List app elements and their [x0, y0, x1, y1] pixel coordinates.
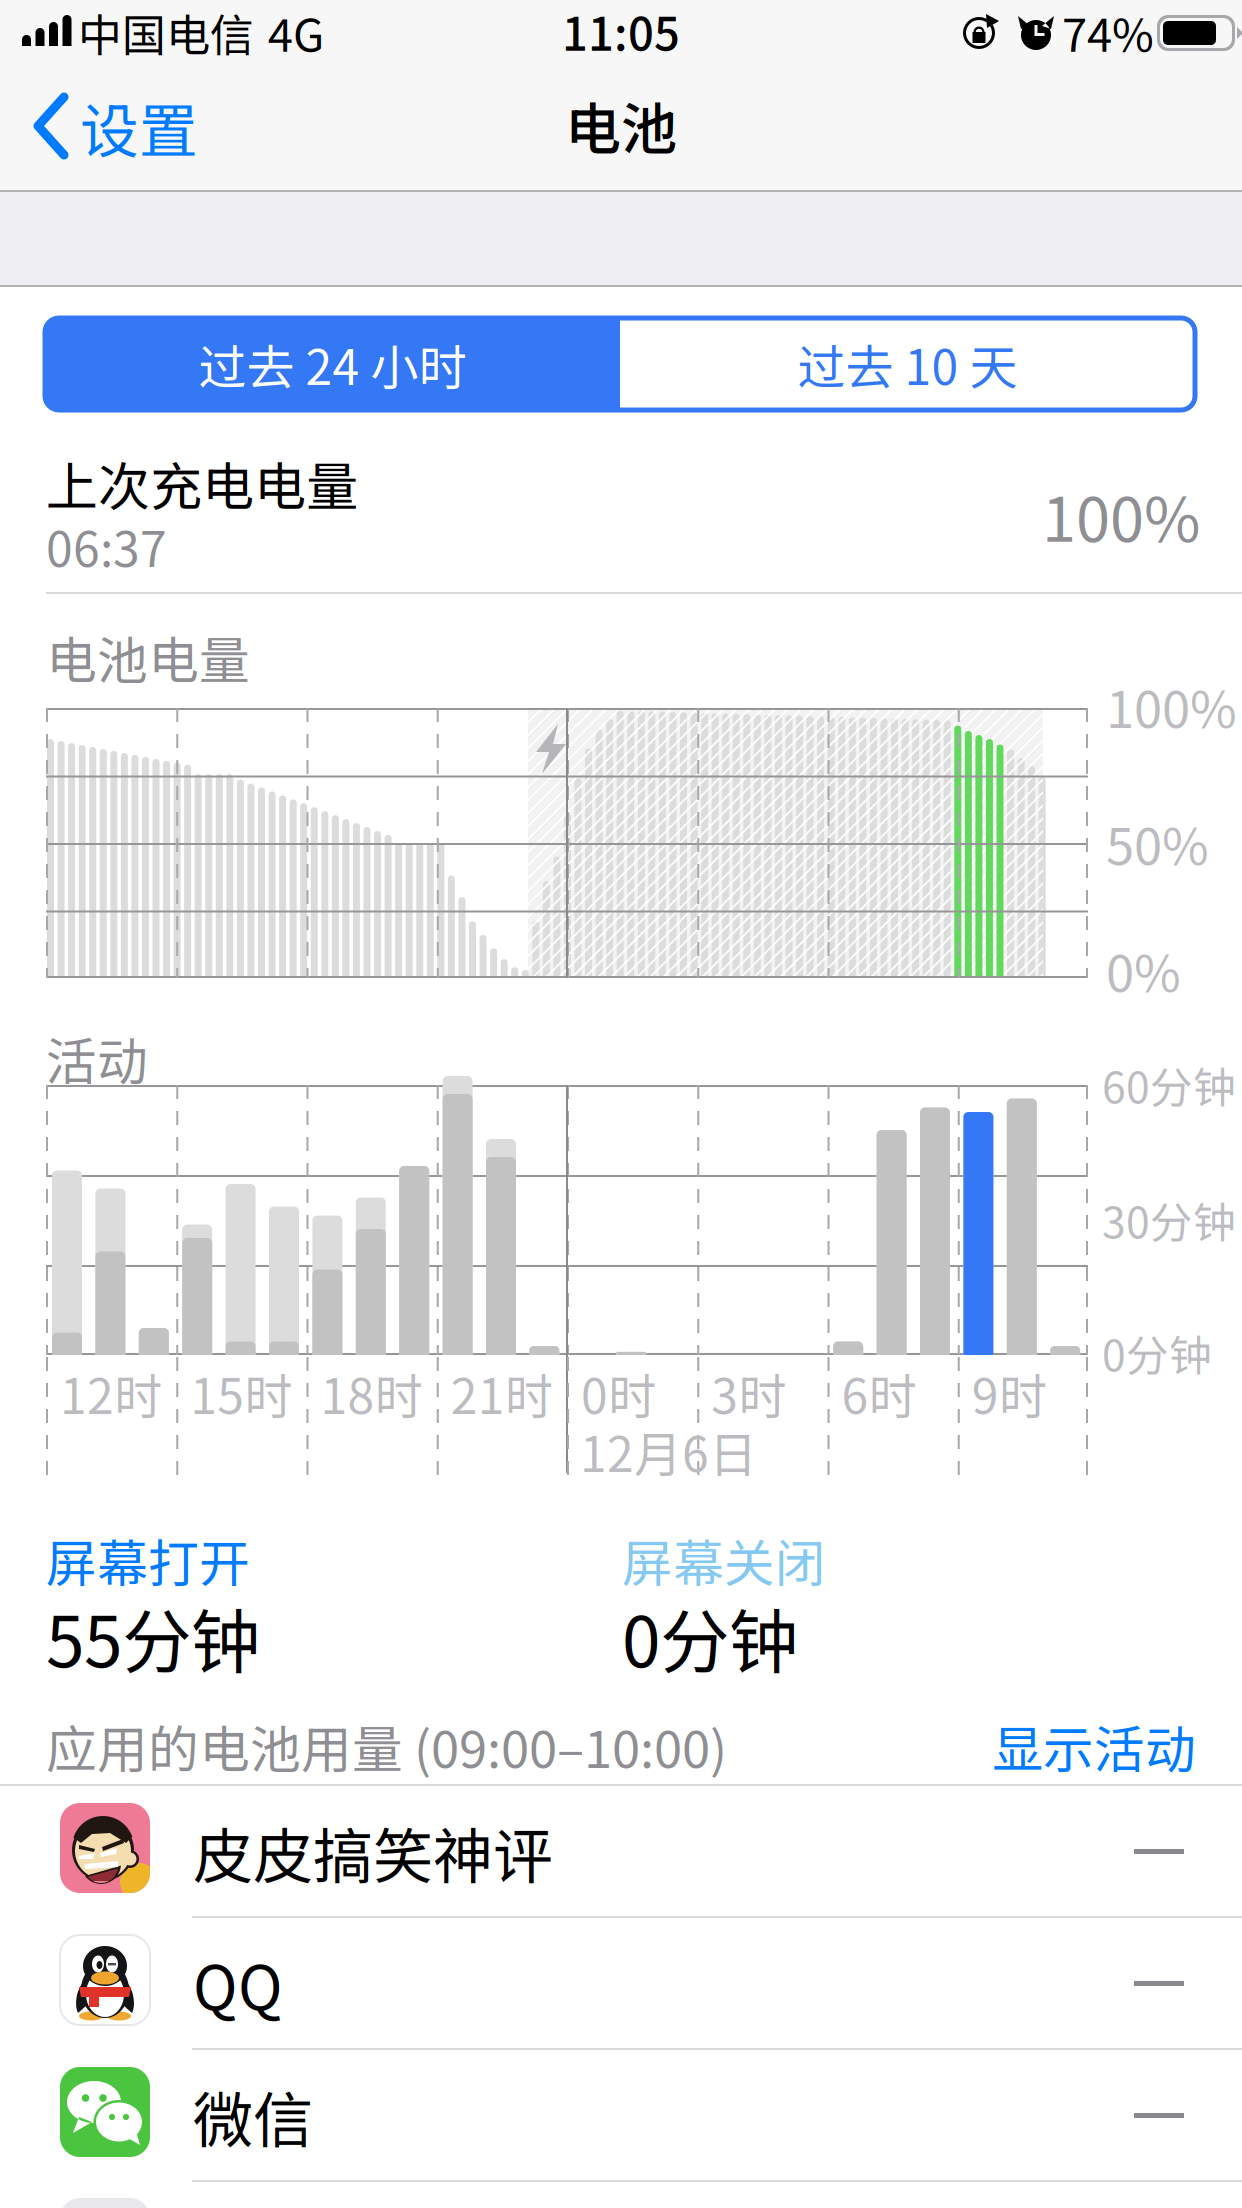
staticText: 中国电信	[78, 0, 254, 64]
staticText: 74%	[1062, 0, 1154, 65]
staticText: 06:37	[46, 511, 167, 581]
staticText: 12月6日	[580, 1416, 757, 1486]
staticText: 15时	[190, 1358, 292, 1428]
staticText: 18时	[320, 1358, 422, 1428]
button[interactable]: 显示活动	[956, 1706, 1196, 1786]
staticText: 50%	[1106, 806, 1209, 880]
staticText: 上次充电电量	[46, 445, 358, 521]
button[interactable]: 过去 10 天	[620, 318, 1195, 410]
button[interactable]: 皮皮搞笑神评	[0, 1786, 1242, 1918]
staticText: 应用的电池用量 (09:00–10:00)	[46, 1709, 727, 1783]
button[interactable]: QQ	[0, 1918, 1242, 2050]
staticText: 9时	[972, 1358, 1047, 1428]
staticText: 100%	[1106, 669, 1237, 743]
staticText: 活动	[46, 1021, 148, 1095]
staticText: 0%	[1106, 933, 1181, 1007]
staticText: 30分钟	[1102, 1189, 1236, 1251]
staticText: 电池	[565, 84, 677, 166]
button[interactable]: 设置	[0, 66, 260, 186]
staticText: 6时	[841, 1358, 916, 1428]
staticText: 显示活动	[992, 1709, 1196, 1783]
staticText: 屏幕打开	[46, 1523, 250, 1597]
staticText: 60分钟	[1102, 1054, 1236, 1116]
staticText: 4G	[268, 0, 324, 65]
staticText: 微信	[193, 2073, 313, 2159]
staticText: QQ	[193, 1941, 283, 2027]
staticText: 0分钟	[1102, 1322, 1212, 1384]
staticText: 0分钟	[622, 1587, 798, 1687]
staticText: 屏幕关闭	[622, 1523, 826, 1597]
button[interactable]: 微信	[0, 2050, 1242, 2182]
staticText: 100%	[1042, 471, 1200, 559]
staticText: 0时	[581, 1358, 656, 1428]
staticText: 55分钟	[46, 1587, 260, 1687]
staticText: 皮皮搞笑神评	[193, 1809, 553, 1895]
staticText: 电池电量	[46, 620, 250, 694]
staticText: 3时	[711, 1358, 786, 1428]
staticText: 设置	[80, 84, 198, 169]
staticText: 21时	[451, 1358, 553, 1428]
staticText: 12时	[60, 1358, 162, 1428]
button[interactable]: 过去 24 小时	[45, 318, 620, 410]
staticText: 过去 24 小时	[198, 329, 466, 399]
staticText: 11:05	[562, 0, 680, 64]
staticText: 过去 10 天	[797, 329, 1017, 399]
